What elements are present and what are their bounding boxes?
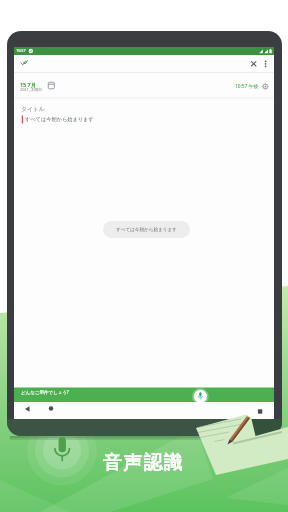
button[interactable] [247,57,260,70]
button[interactable] [21,402,35,416]
staticText: どんなご用件でしょう? [21,389,69,395]
button[interactable] [191,387,210,406]
button[interactable] [259,80,272,93]
staticText: 音声認識 [103,451,185,474]
button[interactable] [260,57,272,70]
staticText: タイトル [21,105,45,112]
button[interactable] [28,416,96,484]
staticText: 2021, 木曜日 [20,87,43,92]
staticText: 15 7月 [20,81,37,88]
staticText: 10:57 午後 [235,83,259,90]
staticText: すべては今朝から始まります [25,116,94,123]
staticText: 10:57 [16,48,26,53]
button[interactable] [254,405,266,417]
staticText: すべては今朝から始まります [116,227,177,233]
button[interactable] [44,402,58,416]
button[interactable] [46,79,57,90]
